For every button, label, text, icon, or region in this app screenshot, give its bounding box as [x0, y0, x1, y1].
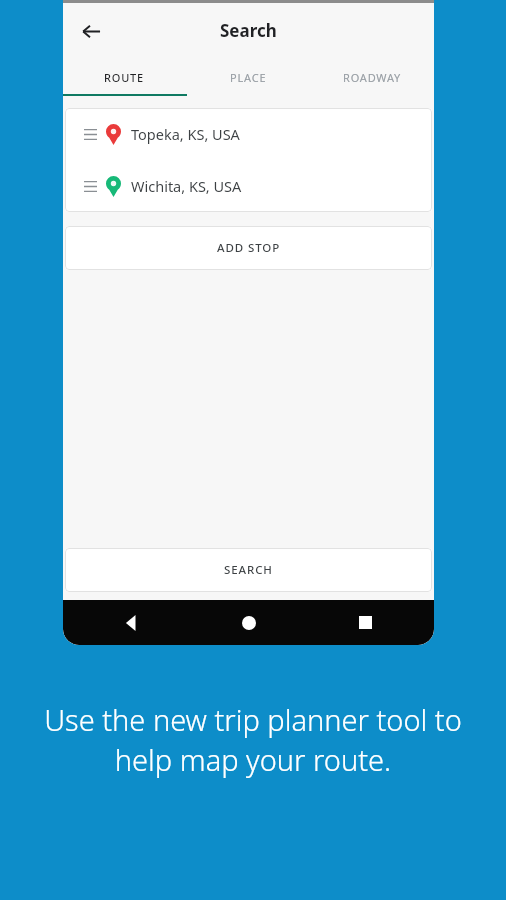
- button[interactable]: SEARCH: [65, 548, 432, 592]
- staticText: ROUTE: [104, 70, 145, 85]
- button[interactable]: Back: [73, 600, 190, 645]
- button[interactable]: PLACE: [186, 58, 310, 96]
- staticText: Search: [220, 19, 277, 42]
- staticText: ADD STOP: [217, 240, 281, 256]
- button[interactable]: ADD STOP: [65, 226, 432, 270]
- button[interactable]: Recent apps: [307, 600, 424, 645]
- button[interactable]: Wichita, KS, USA: [65, 160, 432, 212]
- button[interactable]: Back: [69, 9, 113, 53]
- button[interactable]: ROUTE: [63, 58, 186, 96]
- staticText: SEARCH: [224, 562, 273, 578]
- staticText: ROADWAY: [343, 70, 402, 85]
- button[interactable]: ROADWAY: [310, 58, 434, 96]
- staticText: Use the new trip planner tool to help ma…: [30, 700, 476, 780]
- button[interactable]: Topeka, KS, USA: [65, 108, 432, 160]
- staticText: PLACE: [230, 70, 267, 85]
- staticText: Wichita, KS, USA: [131, 176, 242, 196]
- staticText: Topeka, KS, USA: [131, 124, 240, 144]
- button[interactable]: Home: [190, 600, 307, 645]
